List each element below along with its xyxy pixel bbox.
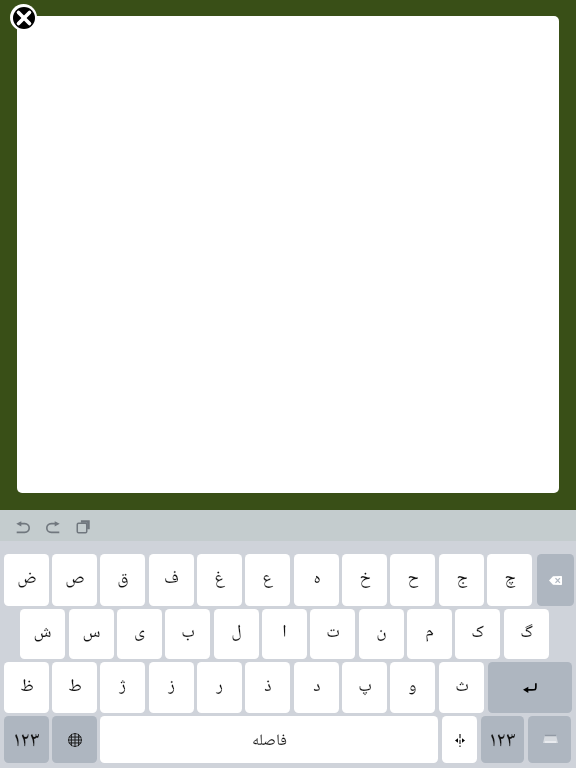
button[interactable]: Undo xyxy=(9,515,37,539)
staticText: ک xyxy=(471,620,484,644)
button[interactable]: ژ xyxy=(100,662,145,713)
button[interactable]: Move cursor xyxy=(442,716,477,763)
button[interactable]: ۱۲۳ xyxy=(4,716,49,763)
staticText: ض xyxy=(17,566,37,590)
staticText: ۱۲۳ xyxy=(489,727,516,756)
button[interactable]: Change language xyxy=(52,716,97,763)
button[interactable]: س xyxy=(69,609,114,659)
staticText: ص xyxy=(65,566,85,590)
button[interactable]: غ xyxy=(197,554,242,606)
button[interactable]: گ xyxy=(504,609,549,659)
staticText: گ xyxy=(520,620,533,644)
staticText: ث xyxy=(455,674,469,698)
staticText: ذ xyxy=(264,674,272,698)
button[interactable]: خ xyxy=(342,554,387,606)
button[interactable]: Redo xyxy=(39,515,67,539)
staticText: چ xyxy=(504,566,516,590)
button[interactable]: چ xyxy=(487,554,532,606)
staticText: ش xyxy=(33,620,52,644)
button[interactable]: Copy xyxy=(69,514,97,538)
button[interactable]: ض xyxy=(4,554,49,606)
staticText: د xyxy=(313,674,321,698)
button[interactable]: ث xyxy=(439,662,484,713)
button[interactable]: ح xyxy=(390,554,435,606)
staticText: ب xyxy=(181,620,195,644)
staticText: ف xyxy=(164,566,179,590)
button[interactable]: ک xyxy=(455,609,500,659)
staticText: ج xyxy=(456,566,468,590)
button[interactable]: ط xyxy=(52,662,97,713)
button[interactable]: و xyxy=(390,662,435,713)
button[interactable]: پ xyxy=(342,662,387,713)
button[interactable]: ۱۲۳ xyxy=(481,716,524,763)
staticText: ژ xyxy=(119,674,126,698)
button[interactable]: Close xyxy=(10,4,37,31)
staticText: س xyxy=(82,620,101,644)
button[interactable]: م xyxy=(407,609,452,659)
button[interactable]: ف xyxy=(149,554,194,606)
button[interactable]: ج xyxy=(439,554,484,606)
staticText: ه xyxy=(313,566,321,590)
button[interactable]: ت xyxy=(310,609,355,659)
staticText: و xyxy=(408,674,417,698)
button[interactable]: ز xyxy=(149,662,194,713)
button[interactable]: فاصله xyxy=(100,716,438,763)
button[interactable]: ظ xyxy=(4,662,49,713)
staticText: ن xyxy=(376,620,387,644)
button[interactable]: Enter xyxy=(488,662,572,713)
staticText: ر xyxy=(216,674,223,698)
staticText: ز xyxy=(168,674,175,698)
button[interactable]: ه xyxy=(294,554,339,606)
button[interactable]: ی xyxy=(117,609,162,659)
staticText: ۱۲۳ xyxy=(13,727,40,756)
staticText: ت xyxy=(326,620,340,644)
button[interactable]: ص xyxy=(52,554,97,606)
button[interactable]: ش xyxy=(20,609,65,659)
staticText: م xyxy=(425,620,434,644)
button[interactable]: ع xyxy=(245,554,290,606)
button[interactable]: ق xyxy=(100,554,145,606)
button[interactable]: Hide keyboard xyxy=(528,716,571,763)
staticText: پ xyxy=(358,674,372,698)
staticText: ی xyxy=(134,620,145,644)
staticText: ل xyxy=(231,620,242,644)
staticText: غ xyxy=(214,566,225,590)
staticText: ا xyxy=(282,620,287,644)
button[interactable]: د xyxy=(294,662,339,713)
staticText: ع xyxy=(262,566,273,590)
staticText: ط xyxy=(68,674,82,698)
staticText: فاصله xyxy=(252,730,287,752)
button[interactable]: Backspace xyxy=(537,554,574,606)
button[interactable]: ر xyxy=(197,662,242,713)
staticText: ق xyxy=(117,566,129,590)
button[interactable]: ب xyxy=(165,609,210,659)
staticText: ح xyxy=(407,566,419,590)
button[interactable]: ا xyxy=(262,609,307,659)
staticText: ظ xyxy=(20,674,34,698)
button[interactable]: ل xyxy=(214,609,259,659)
button[interactable]: ن xyxy=(359,609,404,659)
staticText: خ xyxy=(359,566,371,590)
button[interactable]: ذ xyxy=(245,662,290,713)
